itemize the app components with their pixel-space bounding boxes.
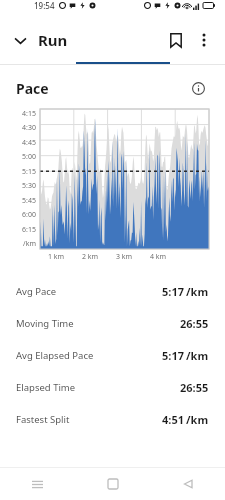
staticText: Elapsed Time bbox=[16, 381, 76, 394]
staticText: /km bbox=[186, 284, 209, 299]
staticText: 5:30 bbox=[22, 181, 36, 191]
button[interactable]: Save bbox=[163, 27, 189, 53]
button[interactable]: Recents bbox=[0, 468, 75, 500]
button[interactable]: Avg Elapsed Pace bbox=[0, 339, 225, 371]
button[interactable]: Avg Pace bbox=[0, 275, 225, 307]
staticText: Moving Time bbox=[16, 317, 74, 330]
staticText: Avg Pace bbox=[16, 285, 57, 298]
staticText: 4:45 bbox=[22, 138, 36, 148]
staticText: Pace bbox=[16, 79, 49, 98]
staticText: 1 km bbox=[48, 252, 65, 261]
button[interactable]: Info bbox=[187, 77, 209, 99]
staticText: 6:00 bbox=[22, 210, 36, 220]
staticText: /km bbox=[186, 348, 209, 363]
staticText: 4 km bbox=[150, 252, 167, 261]
staticText: 4:30 bbox=[22, 123, 36, 133]
staticText: Fastest Split bbox=[16, 413, 70, 426]
staticText: 5:15 bbox=[22, 167, 36, 177]
button[interactable]: Collapse bbox=[8, 28, 32, 52]
staticText: 3 km bbox=[116, 252, 133, 261]
staticText: /km bbox=[23, 239, 36, 249]
button[interactable]: Moving Time bbox=[0, 307, 225, 339]
staticText: /km bbox=[186, 412, 209, 427]
button[interactable]: Run bbox=[38, 30, 68, 50]
staticText: 4:15 bbox=[22, 109, 36, 119]
button[interactable]: Home bbox=[75, 468, 150, 500]
staticText: 4:51 bbox=[162, 412, 184, 427]
staticText: 5:17 bbox=[162, 284, 184, 299]
staticText: Avg Elapsed Pace bbox=[16, 349, 94, 362]
staticText: 6:15 bbox=[22, 225, 36, 235]
button[interactable]: More options bbox=[191, 27, 217, 53]
staticText: 26:55 bbox=[180, 316, 209, 331]
staticText: 5:17 bbox=[162, 348, 184, 363]
staticText: 2 km bbox=[82, 252, 99, 261]
button[interactable]: Back bbox=[150, 468, 225, 500]
button[interactable]: Fastest Split bbox=[0, 403, 225, 435]
staticText: 5:00 bbox=[22, 152, 36, 162]
staticText: 5:45 bbox=[22, 196, 36, 206]
staticText: 26:55 bbox=[180, 380, 209, 395]
button[interactable]: Elapsed Time bbox=[0, 371, 225, 403]
staticText: 19:54 bbox=[34, 0, 55, 11]
